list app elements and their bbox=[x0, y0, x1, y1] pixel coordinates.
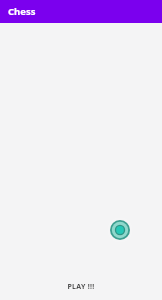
staticText: Chess bbox=[8, 5, 36, 18]
button[interactable]: Chess piece bbox=[106, 216, 134, 244]
button[interactable]: Chess bbox=[0, 0, 162, 23]
button[interactable]: PLAY !!! bbox=[67, 282, 95, 292]
